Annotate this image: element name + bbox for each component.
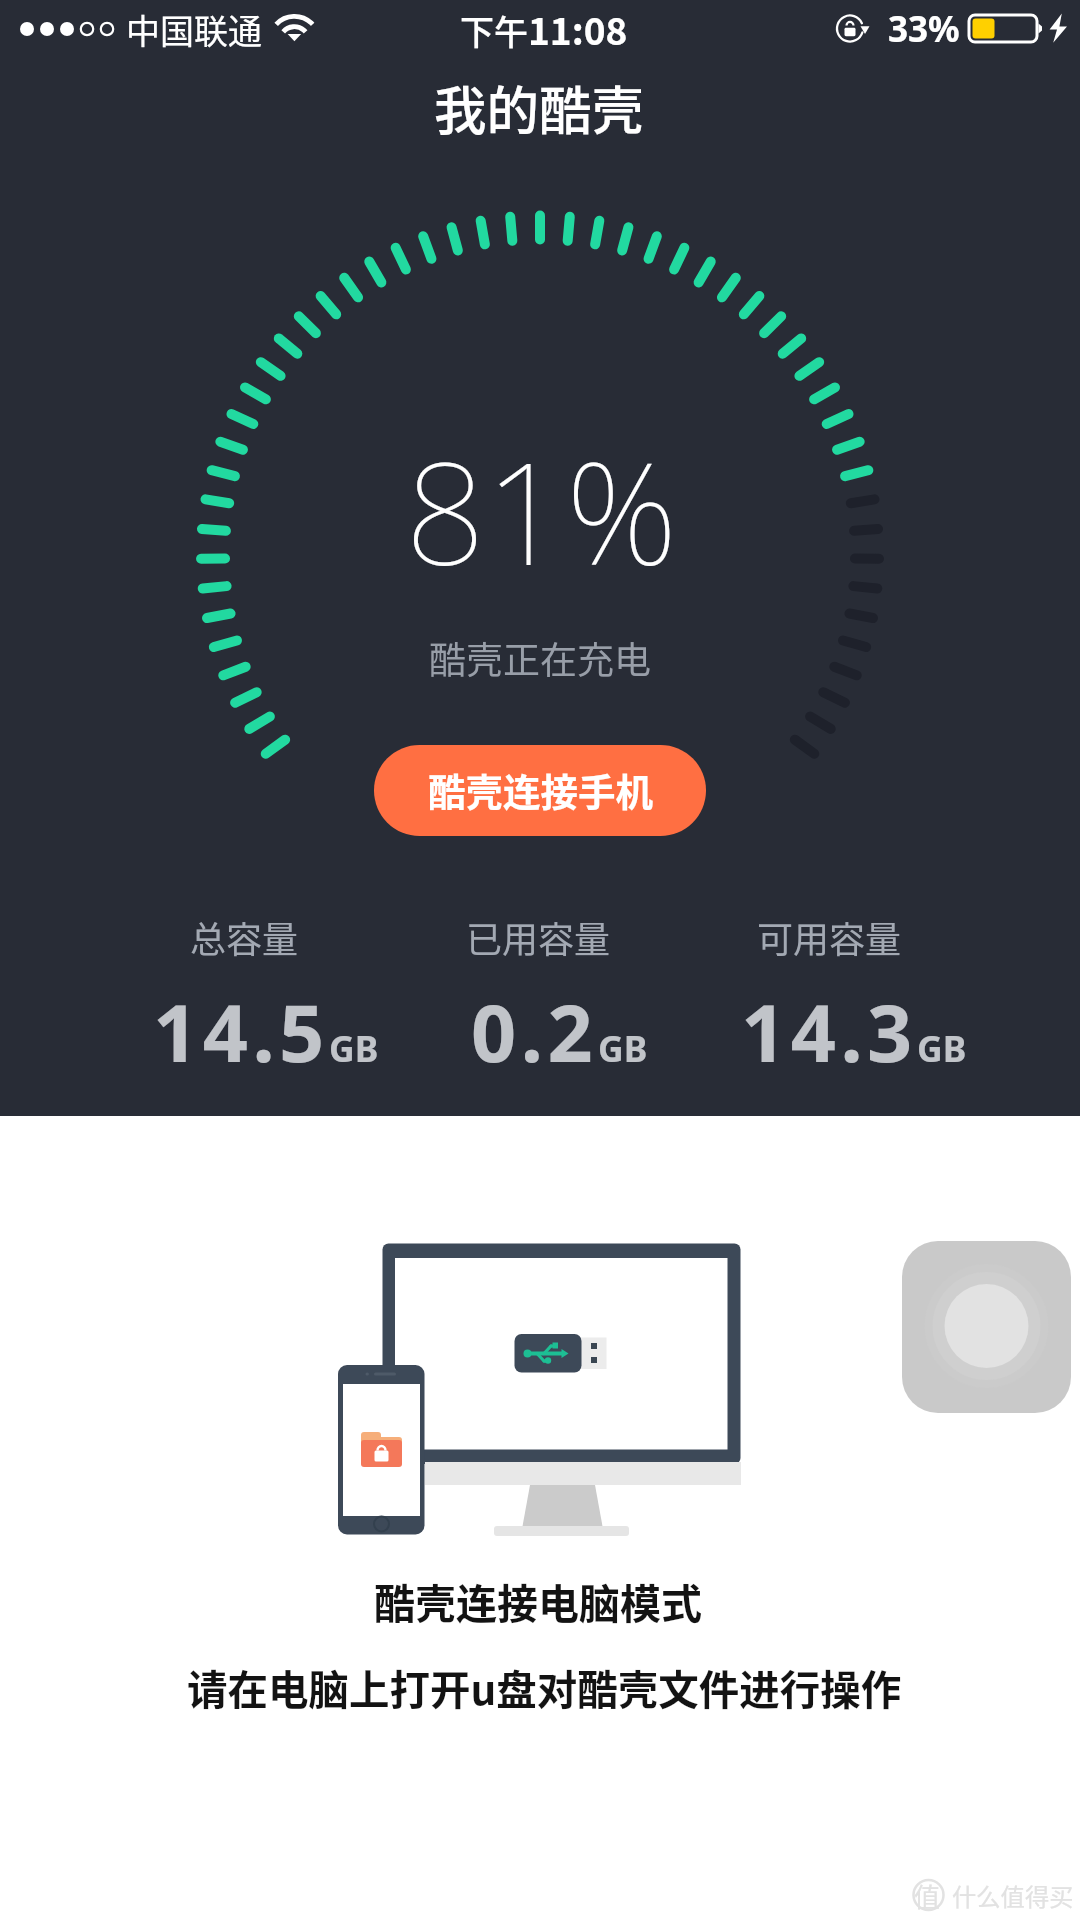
button[interactable]: 酷壳连接手机: [374, 745, 706, 836]
staticText: 我的酷壳: [434, 69, 645, 145]
staticText: 中国联通: [126, 5, 262, 54]
staticText: GB: [598, 1024, 648, 1072]
staticText: 请在电脑上打开u盘对酷壳文件进行操作: [187, 1658, 902, 1717]
staticText: 什么值得买: [952, 1878, 1074, 1913]
staticText: 33%: [888, 5, 960, 53]
staticText: 81%: [405, 414, 678, 606]
staticText: 酷壳连接电脑模式: [374, 1571, 702, 1630]
staticText: 已用容量: [466, 911, 611, 963]
staticText: 下午11:08: [460, 2, 628, 56]
staticText: GB: [917, 1024, 967, 1072]
staticText: 酷壳连接手机: [428, 762, 653, 816]
staticText: 总容量: [190, 911, 299, 963]
staticText: 14.5: [153, 978, 329, 1086]
staticText: 0.2: [471, 978, 598, 1086]
staticText: 可用容量: [757, 911, 902, 963]
staticText: 酷壳正在充电: [429, 631, 651, 685]
staticText: 值: [914, 1877, 941, 1915]
staticText: 14.3: [741, 978, 917, 1086]
staticText: GB: [329, 1024, 379, 1072]
